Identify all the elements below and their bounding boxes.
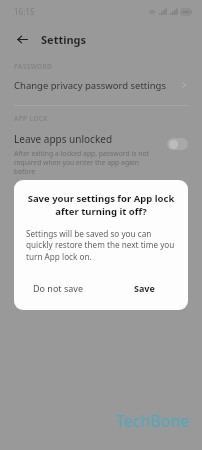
staticText: Settings: [41, 32, 87, 47]
staticText: Save: [134, 282, 155, 294]
button[interactable]: Save: [101, 276, 188, 300]
staticText: Change privacy password settings: [14, 79, 167, 92]
staticText: PASSWORD: [14, 62, 53, 71]
staticText: Settings will be saved so you can quickl…: [26, 228, 176, 263]
button[interactable]: Do not save: [14, 276, 101, 300]
staticText: 16:15: [14, 6, 35, 17]
staticText: Leave apps unlocked: [14, 132, 113, 146]
button[interactable]: Leave apps unlocked toggle: [167, 138, 188, 150]
staticText: APP LOCK: [14, 114, 48, 123]
staticText: Save your settings for App lock after tu…: [26, 192, 176, 218]
staticText: Do not save: [33, 282, 83, 294]
button[interactable]: Change privacy password settings: [0, 71, 202, 99]
staticText: After exiting a locked app, password is …: [14, 149, 161, 176]
button[interactable]: Back: [12, 29, 32, 49]
staticText: TechBone: [116, 410, 190, 432]
button[interactable]: Leave apps unlocked: [0, 132, 202, 176]
